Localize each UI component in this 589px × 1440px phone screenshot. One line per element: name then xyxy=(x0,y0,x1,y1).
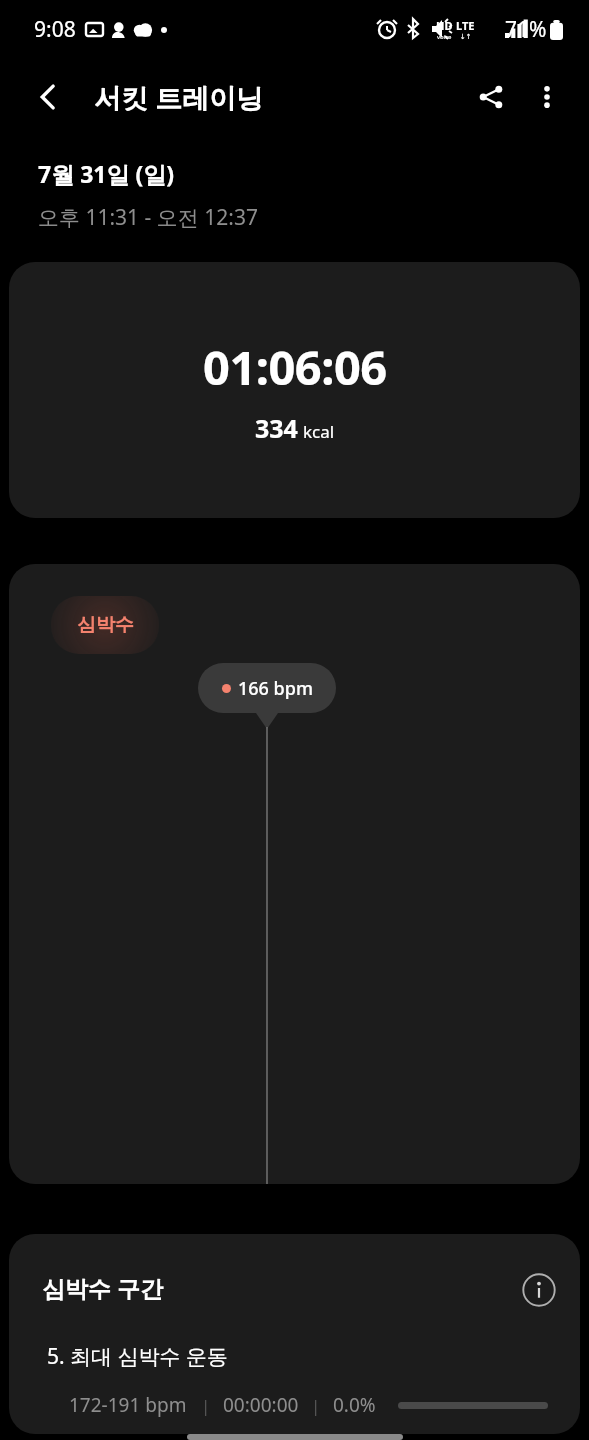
button[interactable]: 01:06:06 xyxy=(9,262,580,518)
staticText: 서킷 트레이닝 xyxy=(94,79,264,116)
staticText: kcal xyxy=(303,420,335,443)
button[interactable]: Information xyxy=(517,1268,561,1312)
staticText: 7월 31일 (일) xyxy=(38,158,175,189)
staticText: 0.0% xyxy=(333,1392,376,1418)
staticText: | xyxy=(201,1394,211,1417)
staticText: 172-191 bpm xyxy=(69,1392,187,1418)
button[interactable]: More options xyxy=(519,69,575,125)
button[interactable]: Back xyxy=(22,70,76,124)
staticText: | xyxy=(311,1394,321,1417)
staticText: ↓↑ xyxy=(460,33,472,41)
staticText: 71% xyxy=(505,15,547,44)
staticText: 오후 11:31 - 오전 12:37 xyxy=(38,203,258,232)
staticText: 9:08 xyxy=(34,15,76,44)
staticText: LTE xyxy=(456,18,475,33)
staticText: 01:06:06 xyxy=(203,335,387,399)
staticText: 166 bpm xyxy=(238,676,313,701)
staticText: HD xyxy=(436,18,453,33)
button[interactable]: 심박수 구간 xyxy=(9,1234,580,1434)
button[interactable]: Share xyxy=(463,69,519,125)
staticText: 00:00:00 xyxy=(223,1392,299,1418)
staticText: 334 xyxy=(255,411,298,445)
staticText: 심박수 구간 xyxy=(42,1272,163,1303)
staticText: 심박수 xyxy=(77,613,134,637)
staticText: 5. 최대 심박수 운동 xyxy=(47,1342,229,1371)
button[interactable]: 심박수 xyxy=(9,564,580,1184)
staticText: voice xyxy=(437,33,452,41)
